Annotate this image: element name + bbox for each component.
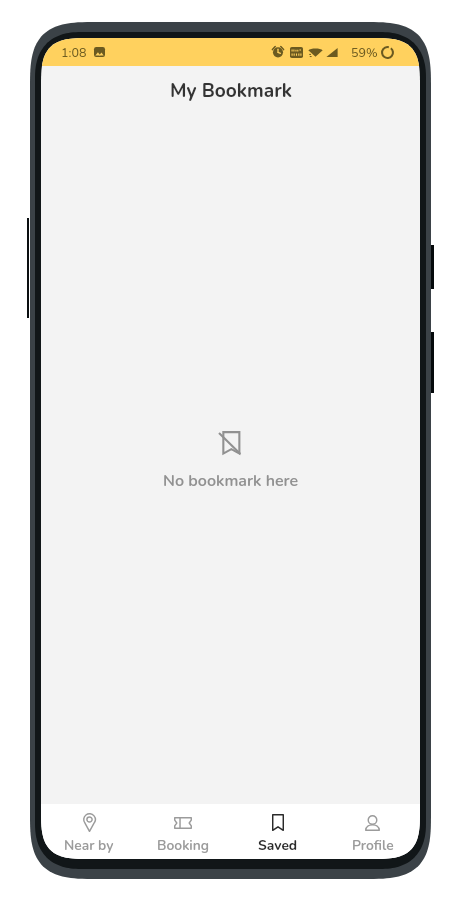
button[interactable]: Near by <box>42 804 136 859</box>
staticText: Profile <box>352 836 394 855</box>
staticText: Saved <box>258 836 298 855</box>
button[interactable]: Booking <box>136 804 230 859</box>
staticText: Booking <box>157 836 210 855</box>
button[interactable]: Profile <box>325 804 420 859</box>
staticText: My Bookmark <box>170 78 292 104</box>
staticText: 1:08 <box>61 44 87 61</box>
staticText: No bookmark here <box>163 470 299 492</box>
button[interactable]: Saved <box>230 804 325 859</box>
staticText: 59% <box>351 44 378 61</box>
staticText: Near by <box>64 836 114 855</box>
